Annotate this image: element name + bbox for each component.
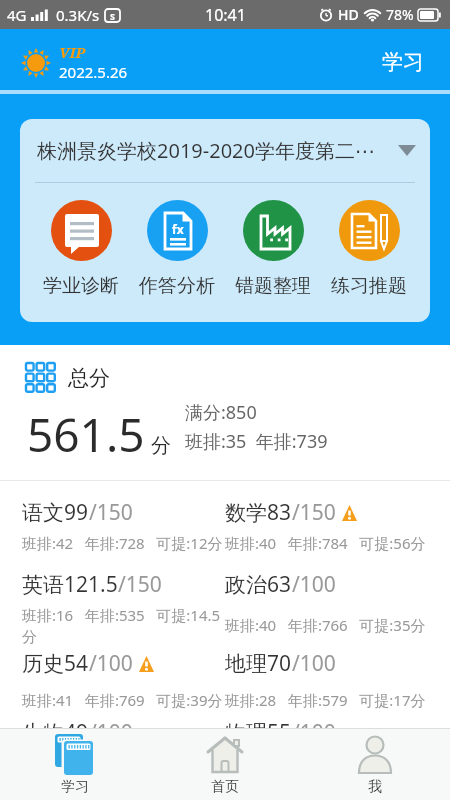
- staticText: 学业诊断: [43, 274, 119, 298]
- staticText: VIP: [59, 42, 86, 62]
- staticText: 班排:40 年排:784 可提:56分: [225, 533, 428, 553]
- staticText: 0.3K/s: [56, 5, 100, 25]
- staticText: /100: [89, 649, 133, 678]
- staticText: 4G: [7, 5, 27, 25]
- staticText: 练习推题: [331, 274, 407, 298]
- staticText: 数学83: [225, 498, 292, 527]
- staticText: 学习: [382, 49, 424, 75]
- staticText: fx: [172, 221, 184, 237]
- staticText: 2022.5.26: [59, 62, 128, 82]
- button[interactable]: 物理55: [225, 718, 428, 728]
- staticText: 班排:41 年排:769 可提:39分: [22, 690, 225, 710]
- button[interactable]: 学业诊断: [33, 200, 129, 298]
- staticText: 生物49: [22, 718, 89, 728]
- staticText: 株洲景炎学校2019-2020学年度第二⋯: [37, 137, 398, 164]
- button[interactable]: 语文99: [22, 498, 225, 553]
- button[interactable]: 学习: [382, 29, 450, 75]
- staticText: 满分:850: [185, 400, 257, 425]
- staticText: HD: [338, 5, 359, 24]
- staticText: 班排:35 年排:739: [185, 429, 328, 454]
- staticText: S: [110, 10, 115, 22]
- button[interactable]: 英语121.5: [22, 570, 225, 646]
- button[interactable]: 政治63: [225, 570, 428, 635]
- staticText: 政治63: [225, 570, 292, 599]
- staticText: 错题整理: [235, 274, 311, 298]
- staticText: 班排:28 年排:579 可提:17分: [225, 690, 428, 710]
- staticText: 历史54: [22, 649, 89, 678]
- button[interactable]: 练习推题: [321, 200, 417, 298]
- button[interactable]: 错题整理: [225, 200, 321, 298]
- staticText: 地理70: [225, 649, 292, 678]
- staticText: /100: [89, 718, 133, 728]
- staticText: /100: [292, 649, 336, 678]
- staticText: 首页: [211, 778, 239, 796]
- staticText: 物理55: [225, 718, 292, 728]
- button[interactable]: fx: [129, 200, 225, 298]
- staticText: 分: [151, 433, 171, 458]
- staticText: 班排:16 年排:535 可提:14.5 分: [22, 605, 225, 646]
- staticText: 78%: [386, 5, 414, 24]
- staticText: /100: [292, 570, 336, 599]
- staticText: 作答分析: [139, 274, 215, 298]
- staticText: 英语121.5: [22, 570, 118, 599]
- staticText: 学习: [61, 778, 89, 796]
- staticText: 我: [368, 778, 382, 796]
- button[interactable]: 历史54: [22, 649, 225, 710]
- button[interactable]: 数学83: [225, 498, 428, 553]
- staticText: /150: [118, 570, 162, 599]
- staticText: /100: [292, 718, 336, 728]
- staticText: 10:41: [205, 4, 246, 26]
- staticText: 班排:40 年排:766 可提:35分: [225, 615, 428, 635]
- staticText: /150: [292, 498, 336, 527]
- staticText: /150: [89, 498, 133, 527]
- button[interactable]: 首页: [150, 729, 300, 800]
- button[interactable]: 我: [300, 729, 450, 800]
- staticText: 语文99: [22, 498, 89, 527]
- button[interactable]: 地理70: [225, 649, 428, 710]
- staticText: 561.5: [27, 403, 145, 466]
- staticText: 总分: [68, 365, 110, 391]
- button[interactable]: 株洲景炎学校2019-2020学年度第二⋯: [20, 119, 430, 182]
- staticText: 班排:42 年排:728 可提:12分: [22, 533, 225, 553]
- button[interactable]: 生物49: [22, 718, 225, 728]
- button[interactable]: 学习: [0, 729, 150, 800]
